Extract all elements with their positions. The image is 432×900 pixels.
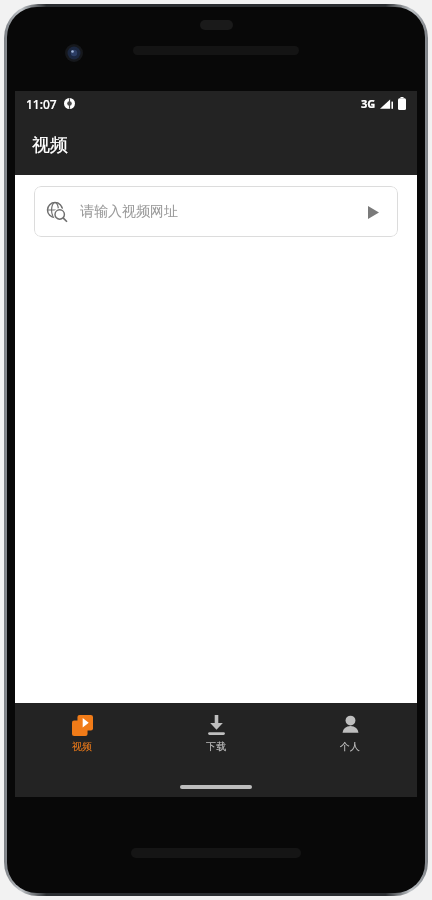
button[interactable]: Search web xyxy=(34,186,398,237)
staticText: 11:07 xyxy=(26,96,57,112)
button[interactable]: 下载 xyxy=(149,703,283,765)
button[interactable]: Play xyxy=(361,200,385,224)
staticText: 个人 xyxy=(340,740,360,753)
staticText: 视频 xyxy=(72,740,92,753)
other: Search web xyxy=(47,202,67,222)
button[interactable]: 个人 xyxy=(283,703,417,765)
staticText: 3G xyxy=(361,96,376,111)
button[interactable]: 视频 xyxy=(15,703,149,765)
staticText: 视频 xyxy=(32,134,68,157)
staticText: 下载 xyxy=(206,740,226,753)
staticText: 请输入视频网址 xyxy=(80,203,178,221)
